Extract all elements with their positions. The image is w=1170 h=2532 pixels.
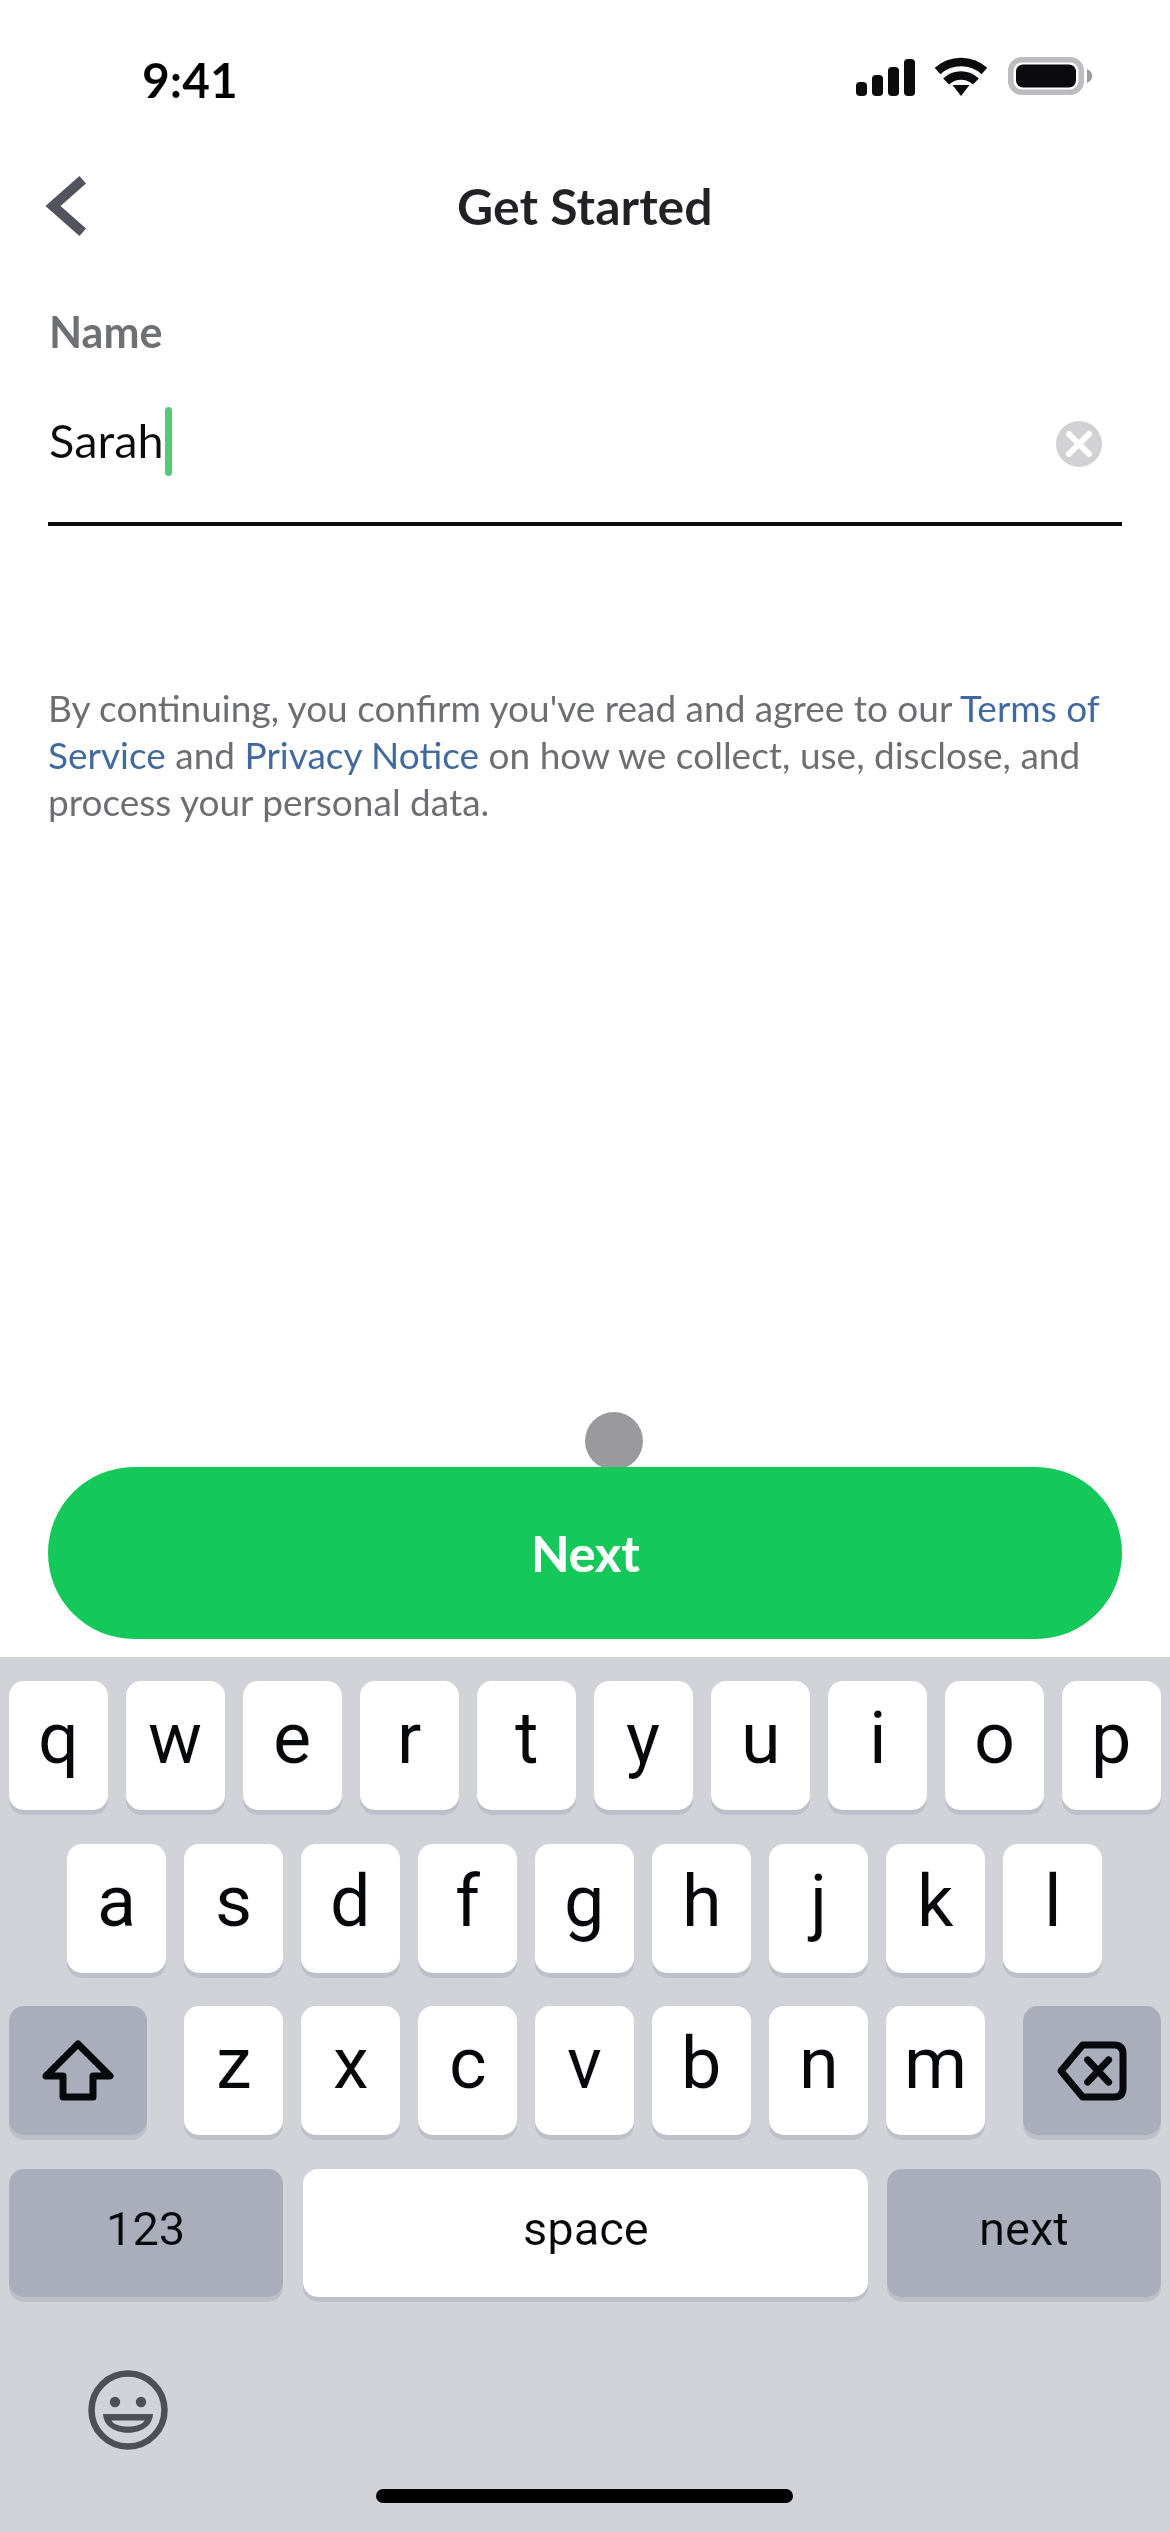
button[interactable]: Back xyxy=(6,150,126,262)
staticText: f xyxy=(455,1859,481,1943)
button[interactable]: a xyxy=(67,1844,166,1973)
staticText: p xyxy=(1091,1696,1132,1780)
staticText: k xyxy=(917,1859,954,1943)
staticText: b xyxy=(681,2021,722,2105)
button[interactable]: q xyxy=(9,1681,108,1810)
staticText: l xyxy=(1044,1859,1062,1943)
staticText: x xyxy=(333,2021,369,2105)
staticText: 9:41 xyxy=(142,51,238,109)
button[interactable]: l xyxy=(1003,1844,1102,1973)
staticText: d xyxy=(330,1859,371,1943)
button[interactable]: v xyxy=(535,2006,634,2135)
button[interactable]: k xyxy=(886,1844,985,1973)
button[interactable]: Next xyxy=(48,1467,1122,1639)
button[interactable]: t xyxy=(477,1681,576,1810)
button[interactable]: n xyxy=(769,2006,868,2135)
button[interactable]: Clear text xyxy=(1046,411,1112,477)
staticText: y xyxy=(626,1696,661,1780)
staticText: o xyxy=(974,1696,1016,1780)
staticText: Next xyxy=(531,1523,640,1583)
staticText: By continuing, you confirm you've read a… xyxy=(48,683,1126,824)
button[interactable]: r xyxy=(360,1681,459,1810)
staticText: t xyxy=(515,1696,539,1780)
button[interactable]: Shift xyxy=(9,2006,147,2135)
staticText: e xyxy=(273,1696,312,1780)
staticText: m xyxy=(904,2021,968,2105)
button[interactable]: Backspace xyxy=(1023,2006,1161,2135)
button[interactable]: space xyxy=(303,2169,868,2297)
staticText: g xyxy=(564,1859,605,1943)
staticText: r xyxy=(397,1696,422,1780)
button[interactable]: h xyxy=(652,1844,751,1973)
staticText: w xyxy=(148,1696,203,1780)
button[interactable]: e xyxy=(243,1681,342,1810)
button[interactable]: Emoji keyboard xyxy=(84,2366,172,2454)
staticText: 123 xyxy=(106,2201,186,2256)
button[interactable]: y xyxy=(594,1681,693,1810)
button[interactable]: j xyxy=(769,1844,868,1973)
staticText: s xyxy=(215,1859,253,1943)
button[interactable]: b xyxy=(652,2006,751,2135)
button[interactable]: g xyxy=(535,1844,634,1973)
staticText: Name xyxy=(49,306,163,358)
staticText: h xyxy=(682,1859,722,1943)
button[interactable]: x xyxy=(301,2006,400,2135)
button[interactable]: i xyxy=(828,1681,927,1810)
button[interactable]: next xyxy=(887,2169,1161,2297)
staticText: j xyxy=(810,1859,828,1943)
button[interactable]: d xyxy=(301,1844,400,1973)
button[interactable]: s xyxy=(184,1844,283,1973)
staticText: q xyxy=(38,1696,79,1780)
button[interactable]: c xyxy=(418,2006,517,2135)
staticText: next xyxy=(979,2201,1069,2256)
staticText: u xyxy=(741,1696,781,1780)
staticText: z xyxy=(216,2021,252,2105)
staticText: a xyxy=(97,1859,137,1943)
button[interactable]: 123 xyxy=(9,2169,283,2297)
staticText: c xyxy=(449,2021,487,2105)
button[interactable]: m xyxy=(886,2006,985,2135)
staticText: n xyxy=(799,2021,839,2105)
staticText: space xyxy=(523,2201,649,2256)
button[interactable]: f xyxy=(418,1844,517,1973)
staticText: Get Started xyxy=(457,176,713,236)
button[interactable]: z xyxy=(184,2006,283,2135)
button[interactable]: u xyxy=(711,1681,810,1810)
button[interactable]: w xyxy=(126,1681,225,1810)
staticText: v xyxy=(567,2021,602,2105)
button[interactable]: p xyxy=(1062,1681,1161,1810)
staticText: Sarah xyxy=(49,412,164,468)
staticText: i xyxy=(869,1696,887,1780)
button[interactable]: o xyxy=(945,1681,1044,1810)
